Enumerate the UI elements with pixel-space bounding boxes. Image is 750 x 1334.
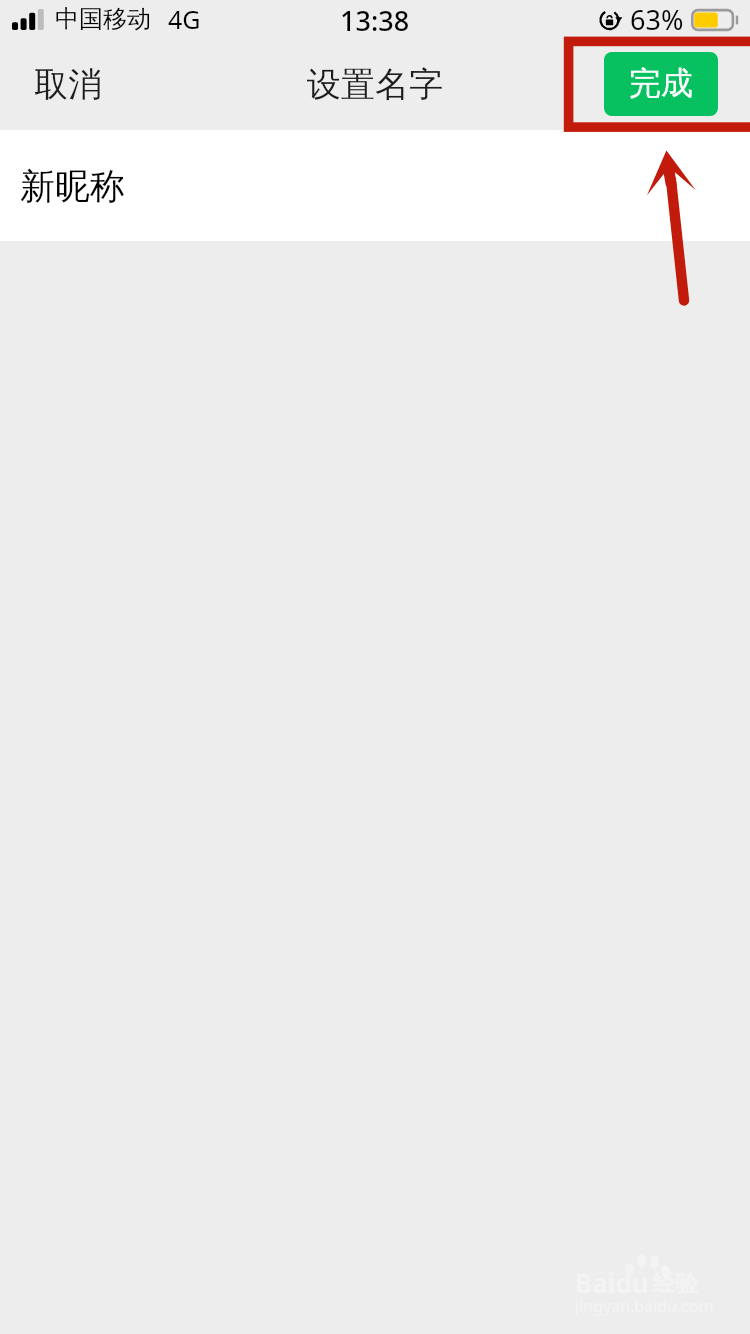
- button[interactable]: 取消: [0, 45, 136, 124]
- staticText: 63%: [630, 1, 684, 38]
- button[interactable]: 新昵称: [0, 130, 750, 241]
- staticText: 新昵称: [20, 164, 125, 208]
- staticText: 取消: [34, 63, 102, 106]
- other: Rotation lock: [599, 9, 621, 31]
- other: Cellular signal strength: [12, 0, 46, 44]
- staticText: 13:38: [340, 2, 410, 39]
- button[interactable]: 完成: [604, 52, 718, 116]
- staticText: 设置名字: [307, 63, 443, 106]
- staticText: 中国移动: [55, 4, 151, 34]
- staticText: 完成: [629, 63, 693, 103]
- staticText: 4G: [168, 2, 201, 36]
- other: Battery 63 percent, low power mode: [691, 8, 739, 32]
